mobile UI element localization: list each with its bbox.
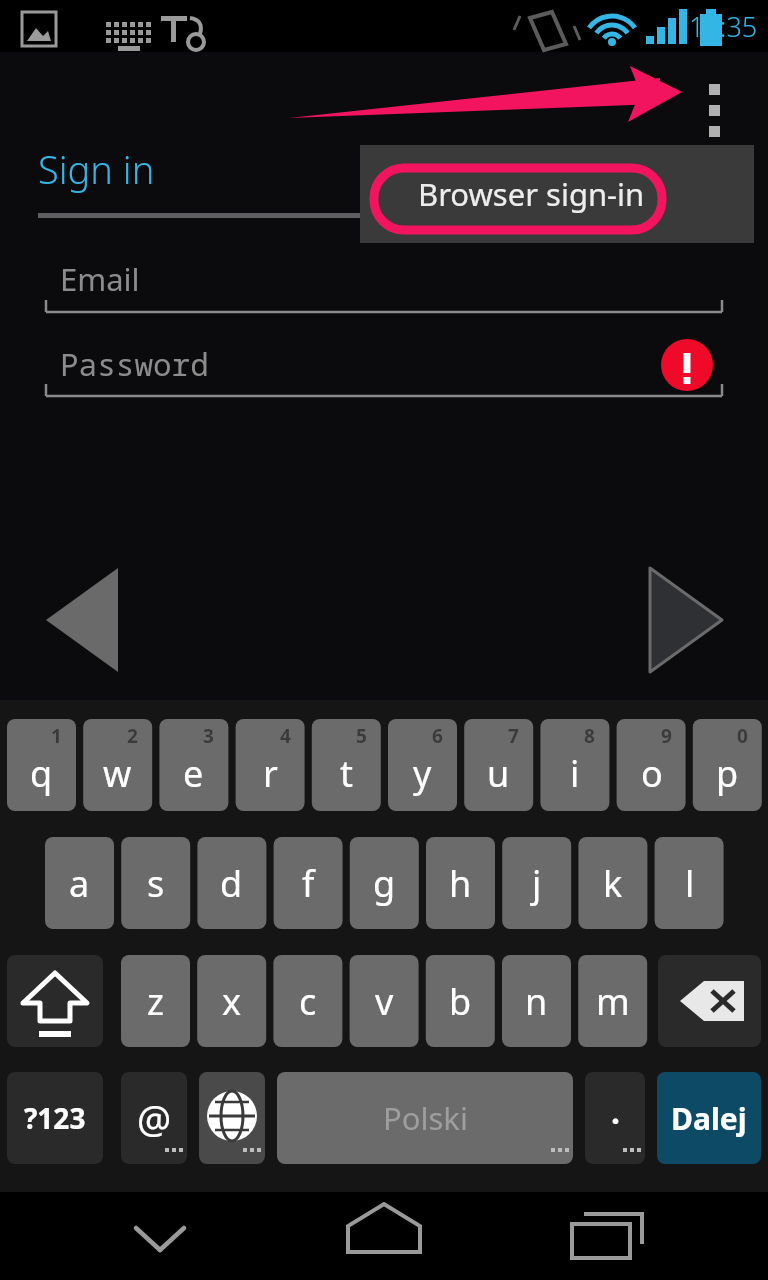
staticText: ?123: [24, 1099, 86, 1137]
button[interactable]: Polski: [277, 1072, 573, 1164]
staticText: n: [525, 977, 548, 1026]
button[interactable]: j: [502, 837, 571, 929]
staticText: 6: [432, 723, 443, 749]
staticText: k: [603, 859, 623, 908]
button[interactable]: Recent apps: [558, 1192, 658, 1280]
staticText: t: [340, 749, 353, 798]
staticText: c: [299, 977, 317, 1026]
button[interactable]: i: [540, 719, 609, 811]
staticText: h: [449, 859, 472, 908]
button[interactable]: b: [426, 955, 495, 1047]
button[interactable]: h: [426, 837, 495, 929]
button[interactable]: e: [159, 719, 228, 811]
button[interactable]: Email: [60, 258, 140, 300]
button[interactable]: y: [388, 719, 457, 811]
button[interactable]: v: [350, 955, 419, 1047]
button[interactable]: r: [236, 719, 305, 811]
staticText: m: [596, 977, 630, 1026]
staticText: j: [532, 859, 542, 908]
button[interactable]: Dalej: [657, 1072, 761, 1164]
staticText: d: [220, 859, 243, 908]
staticText: y: [413, 749, 432, 798]
staticText: Sign in: [38, 143, 155, 195]
staticText: 5: [356, 723, 367, 749]
button[interactable]: Previous: [40, 560, 140, 680]
staticText: i: [570, 749, 580, 798]
button[interactable]: d: [197, 837, 266, 929]
staticText: 7: [508, 723, 519, 749]
button[interactable]: s: [121, 837, 190, 929]
staticText: @: [137, 1092, 172, 1144]
button[interactable]: f: [274, 837, 343, 929]
staticText: s: [147, 859, 165, 908]
staticText: 3: [203, 723, 214, 749]
staticText: 4: [280, 723, 291, 749]
button[interactable]: Password: [60, 343, 209, 385]
button[interactable]: g: [350, 837, 419, 929]
button[interactable]: q: [7, 719, 76, 811]
button[interactable]: k: [578, 837, 647, 929]
staticText: o: [641, 749, 663, 798]
staticText: a: [69, 859, 90, 908]
staticText: .: [611, 1090, 620, 1134]
button[interactable]: Hide keyboard: [110, 1192, 210, 1280]
staticText: 0: [737, 723, 748, 749]
button[interactable]: Change language: [199, 1072, 265, 1164]
staticText: p: [716, 749, 739, 798]
button[interactable]: More options: [676, 62, 748, 134]
button[interactable]: ?123: [7, 1072, 103, 1164]
staticText: r: [263, 749, 278, 798]
button[interactable]: p: [693, 719, 762, 811]
staticText: z: [147, 977, 164, 1026]
button[interactable]: m: [578, 955, 647, 1047]
button[interactable]: o: [617, 719, 686, 811]
staticText: f: [302, 859, 315, 908]
button[interactable]: .: [585, 1072, 645, 1164]
staticText: q: [30, 749, 53, 798]
staticText: u: [487, 749, 510, 798]
staticText: 8: [584, 723, 595, 749]
button[interactable]: Backspace: [658, 955, 761, 1047]
button[interactable]: Browser sign-in: [360, 145, 754, 243]
button[interactable]: x: [197, 955, 266, 1047]
staticText: w: [103, 749, 132, 798]
button[interactable]: n: [502, 955, 571, 1047]
staticText: 14:35: [689, 8, 758, 45]
other: Error: [661, 339, 713, 391]
staticText: g: [373, 859, 396, 908]
button[interactable]: z: [121, 955, 190, 1047]
staticText: b: [449, 977, 472, 1026]
staticText: Browser sign-in: [418, 173, 645, 215]
staticText: 9: [661, 723, 672, 749]
button[interactable]: Next: [636, 560, 736, 680]
button[interactable]: Shift: [7, 955, 103, 1047]
staticText: 2: [127, 723, 138, 749]
button[interactable]: w: [83, 719, 152, 811]
staticText: x: [222, 977, 242, 1026]
staticText: v: [375, 977, 394, 1026]
button[interactable]: @: [121, 1072, 187, 1164]
button[interactable]: Home: [334, 1192, 434, 1280]
button[interactable]: t: [312, 719, 381, 811]
button[interactable]: a: [45, 837, 114, 929]
button[interactable]: l: [655, 837, 724, 929]
button[interactable]: u: [464, 719, 533, 811]
staticText: e: [183, 749, 204, 798]
staticText: Polski: [383, 1097, 468, 1139]
staticText: 1: [51, 723, 62, 749]
staticText: l: [685, 859, 695, 908]
staticText: Dalej: [671, 1098, 747, 1139]
button[interactable]: c: [273, 955, 342, 1047]
